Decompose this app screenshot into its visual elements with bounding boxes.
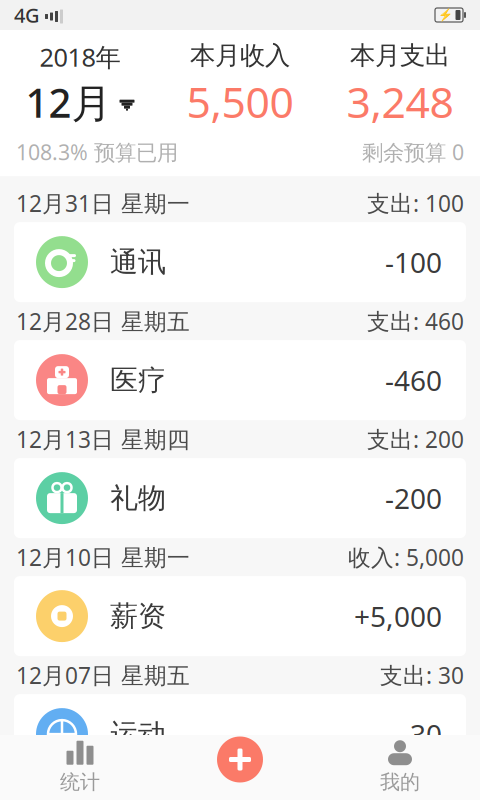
button[interactable]: 礼物 xyxy=(14,458,466,538)
button[interactable]: 薪资 xyxy=(14,576,466,656)
staticText: 2018年 xyxy=(39,40,120,74)
staticText: ⚡ xyxy=(437,8,452,22)
staticText: 3,248 xyxy=(346,73,453,130)
staticText: 薪资 xyxy=(110,599,166,633)
staticText: 支出: 30 xyxy=(380,660,464,690)
staticText: 礼物 xyxy=(110,481,166,515)
staticText: 我的 xyxy=(380,770,420,794)
staticText: 12月10日 星期一 xyxy=(16,542,190,572)
button[interactable]: 统计 xyxy=(0,735,160,800)
staticText: -200 xyxy=(385,479,442,517)
button[interactable]: 医疗 xyxy=(14,340,466,420)
staticText: -100 xyxy=(385,243,442,281)
staticText: 12月07日 星期五 xyxy=(16,660,190,690)
staticText: 统计 xyxy=(60,770,100,794)
button[interactable]: 2018年 xyxy=(0,40,160,129)
staticText: +5,000 xyxy=(354,597,442,635)
staticText: 12月31日 星期一 xyxy=(16,188,190,218)
staticText: 本月支出 xyxy=(350,40,450,71)
staticText: 12月 xyxy=(25,76,111,129)
staticText: 支出: 200 xyxy=(367,424,464,454)
staticText: 5,500 xyxy=(186,73,293,130)
staticText: 4G xyxy=(14,2,40,28)
button[interactable]: 我的 xyxy=(320,735,480,800)
staticText: 支出: 460 xyxy=(367,306,464,336)
staticText: 剩余预算 0 xyxy=(362,138,464,166)
staticText: 运动 xyxy=(110,717,166,751)
staticText: 108.3% 预算已用 xyxy=(16,138,178,166)
staticText: 12月28日 星期五 xyxy=(16,306,190,336)
staticText: -30 xyxy=(401,715,442,753)
staticText: 医疗 xyxy=(110,363,166,397)
button[interactable]: 运动 xyxy=(14,694,466,774)
staticText: 12月13日 星期四 xyxy=(16,424,190,454)
button[interactable]: Add transaction xyxy=(217,736,263,782)
staticText: 通讯 xyxy=(110,245,166,279)
button[interactable]: Add transaction xyxy=(160,735,320,800)
staticText: 支出: 100 xyxy=(367,188,464,218)
staticText: 收入: 5,000 xyxy=(348,542,464,572)
button[interactable]: 通讯 xyxy=(14,222,466,302)
staticText: -460 xyxy=(385,361,442,399)
staticText: 本月收入 xyxy=(190,40,290,71)
